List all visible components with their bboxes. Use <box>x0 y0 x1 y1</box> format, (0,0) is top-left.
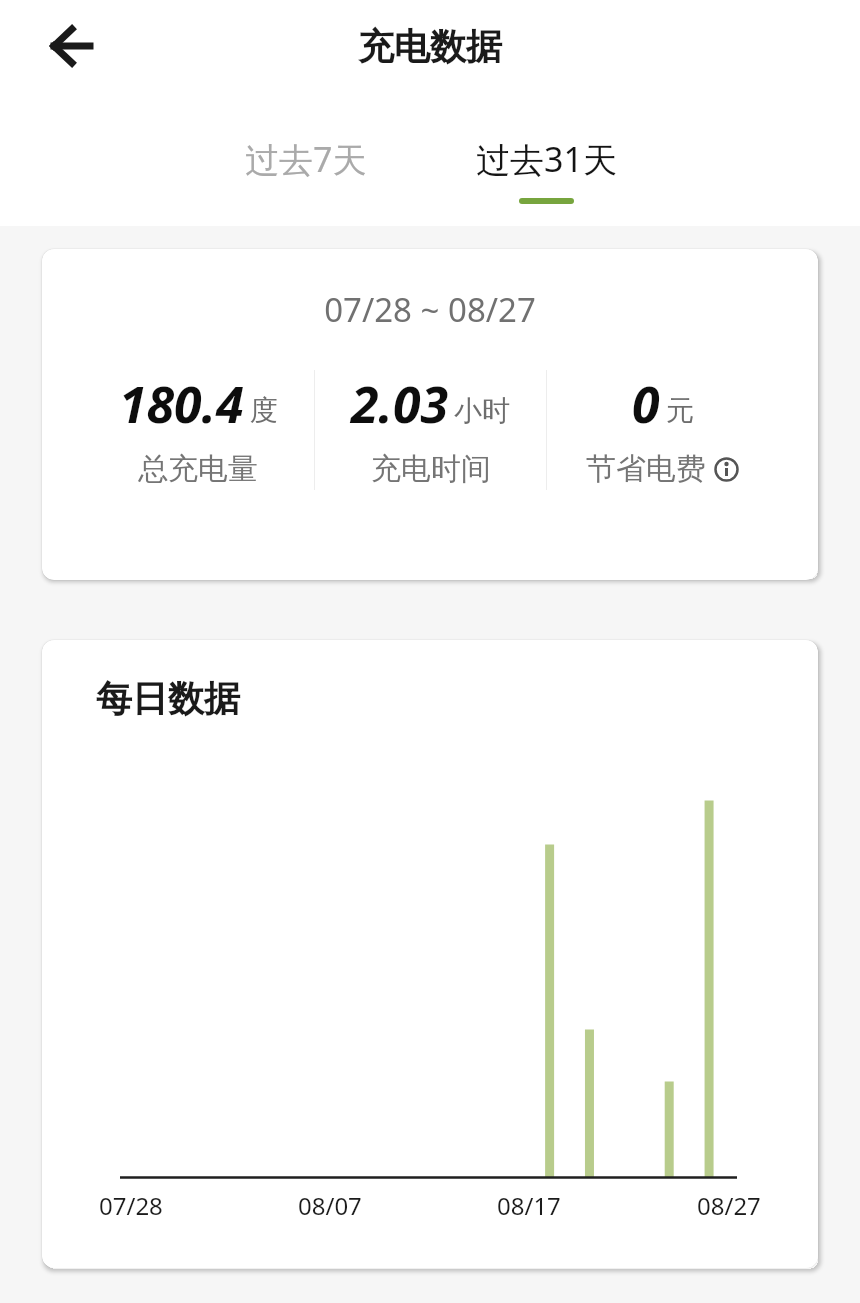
staticText: 节省电费 <box>586 450 706 488</box>
staticText: 0 <box>632 370 660 438</box>
staticText: 07/28 <box>99 1189 163 1222</box>
staticText: 2.03 <box>351 370 448 438</box>
staticText: 充电数据 <box>358 24 502 69</box>
staticText: 过去7天 <box>245 136 367 182</box>
staticText: 充电时间 <box>371 450 491 488</box>
staticText: 180.4 <box>119 370 244 438</box>
staticText: 08/17 <box>497 1189 561 1222</box>
staticText: 过去31天 <box>476 136 617 182</box>
staticText: 08/07 <box>298 1189 362 1222</box>
staticText: 元 <box>666 393 694 428</box>
staticText: 总充电量 <box>138 450 258 488</box>
staticText: 07/28 ~ 08/27 <box>42 287 818 332</box>
staticText: 每日数据 <box>96 676 240 721</box>
staticText: 度 <box>250 393 278 428</box>
staticText: 小时 <box>454 393 510 428</box>
staticText: 08/27 <box>697 1189 761 1222</box>
